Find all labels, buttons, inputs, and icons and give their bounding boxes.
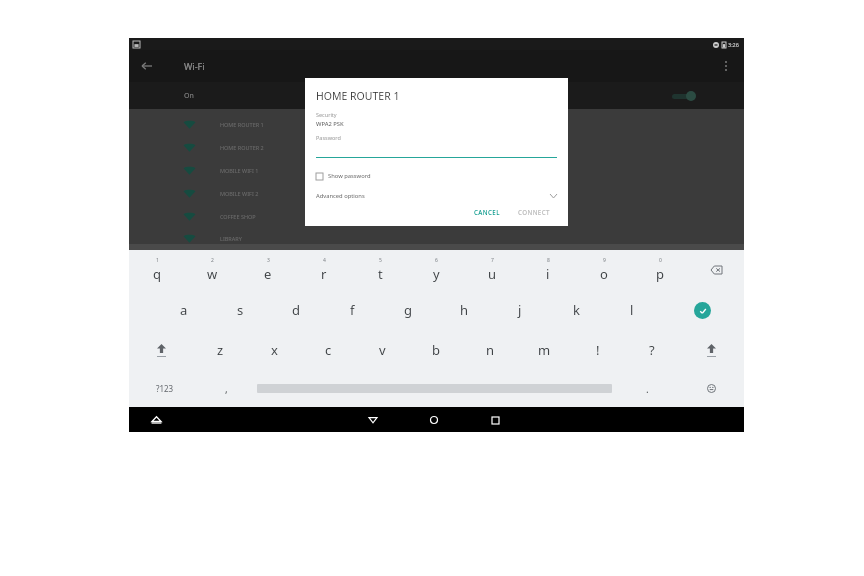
button[interactable]: LIBRARY bbox=[129, 228, 744, 249]
staticText: h bbox=[460, 301, 469, 319]
staticText: t bbox=[378, 265, 383, 283]
button[interactable]: v bbox=[355, 330, 409, 370]
button[interactable]: More options bbox=[716, 56, 736, 76]
button[interactable]: h bbox=[436, 290, 492, 330]
button[interactable]: m bbox=[517, 330, 571, 370]
staticText: k bbox=[573, 301, 580, 319]
staticText: Wi-Fi bbox=[184, 60, 205, 72]
button[interactable]: l bbox=[604, 290, 660, 330]
staticText: 2 bbox=[211, 257, 214, 264]
button[interactable]: z bbox=[193, 330, 247, 370]
staticText: y bbox=[433, 265, 440, 283]
button[interactable]: HOME ROUTER 1 bbox=[129, 113, 744, 136]
button[interactable]: 3 bbox=[240, 250, 296, 290]
staticText: MOBILE WIFI 1 bbox=[220, 167, 259, 174]
button[interactable]: ? bbox=[625, 330, 679, 370]
button[interactable]: x bbox=[247, 330, 301, 370]
button[interactable]: Space bbox=[251, 370, 617, 407]
staticText: w bbox=[207, 265, 218, 283]
staticText: n bbox=[486, 341, 495, 359]
staticText: 1 bbox=[156, 257, 159, 264]
button[interactable]: Recents bbox=[486, 411, 504, 429]
staticText: f bbox=[350, 301, 355, 319]
staticText: l bbox=[630, 301, 634, 319]
button[interactable]: . bbox=[617, 370, 678, 407]
button[interactable]: HOME ROUTER 2 bbox=[129, 136, 744, 159]
button[interactable]: j bbox=[492, 290, 548, 330]
button[interactable]: Wi-Fi toggle bbox=[670, 88, 696, 104]
button[interactable]: c bbox=[301, 330, 355, 370]
staticText: MOBILE WIFI 2 bbox=[220, 190, 259, 197]
staticText: ?123 bbox=[156, 383, 174, 394]
button[interactable]: 1 bbox=[129, 250, 184, 290]
staticText: ? bbox=[649, 341, 655, 359]
button[interactable]: 6 bbox=[408, 250, 464, 290]
staticText: d bbox=[292, 301, 300, 319]
staticText: 7 bbox=[491, 257, 494, 264]
staticText: 6 bbox=[435, 257, 438, 264]
button[interactable]: Shift bbox=[129, 330, 193, 370]
staticText: e bbox=[264, 265, 272, 283]
button[interactable]: Advanced options bbox=[316, 192, 557, 200]
staticText: s bbox=[237, 301, 244, 319]
staticText: , bbox=[225, 382, 228, 396]
button[interactable]: n bbox=[463, 330, 517, 370]
staticText: p bbox=[656, 265, 664, 283]
button[interactable]: f bbox=[324, 290, 380, 330]
button[interactable]: Show password bbox=[316, 172, 371, 180]
staticText: Advanced options bbox=[316, 192, 365, 200]
staticText: 3:26 bbox=[728, 41, 739, 48]
button[interactable]: CANCEL bbox=[467, 205, 507, 219]
staticText: q bbox=[153, 265, 161, 283]
button[interactable]: 5 bbox=[352, 250, 408, 290]
staticText: On bbox=[184, 91, 194, 101]
button[interactable]: 0 bbox=[632, 250, 688, 290]
staticText: WPA2 PSK bbox=[316, 120, 344, 128]
button[interactable]: Shift bbox=[679, 330, 744, 370]
button[interactable]: MOBILE WIFI 1 bbox=[129, 159, 744, 182]
button[interactable]: 2 bbox=[184, 250, 240, 290]
staticText: Password bbox=[316, 134, 341, 141]
button[interactable]: 9 bbox=[576, 250, 632, 290]
staticText: HOME ROUTER 1 bbox=[316, 89, 400, 103]
staticText: 3 bbox=[267, 257, 270, 264]
button[interactable]: d bbox=[268, 290, 324, 330]
button[interactable]: MOBILE WIFI 2 bbox=[129, 182, 744, 205]
staticText: HOME ROUTER 2 bbox=[220, 144, 264, 151]
button[interactable]: s bbox=[212, 290, 268, 330]
button[interactable]: k bbox=[548, 290, 604, 330]
button[interactable]: COFFEE SHOP bbox=[129, 205, 744, 228]
button[interactable]: ! bbox=[571, 330, 625, 370]
staticText: u bbox=[488, 265, 497, 283]
staticText: x bbox=[271, 341, 278, 359]
staticText: i bbox=[546, 265, 550, 283]
button[interactable]: Backspace bbox=[688, 250, 744, 290]
staticText: COFFEE SHOP bbox=[220, 213, 256, 220]
button[interactable]: Enter bbox=[660, 290, 744, 330]
button[interactable]: Back bbox=[137, 56, 157, 76]
button[interactable]: ?123 bbox=[129, 370, 201, 407]
button[interactable]: 8 bbox=[520, 250, 576, 290]
button[interactable]: a bbox=[156, 290, 212, 330]
staticText: Security bbox=[316, 111, 337, 118]
staticText: CONNECT bbox=[518, 208, 550, 216]
button[interactable]: CONNECT bbox=[511, 205, 557, 219]
staticText: 9 bbox=[603, 257, 606, 264]
button[interactable]: Back bbox=[364, 411, 382, 429]
staticText: v bbox=[379, 341, 386, 359]
staticText: j bbox=[518, 301, 522, 319]
button[interactable]: b bbox=[409, 330, 463, 370]
staticText: Show password bbox=[328, 172, 371, 180]
staticText: m bbox=[538, 341, 551, 359]
button[interactable]: 4 bbox=[296, 250, 352, 290]
staticText: . bbox=[646, 382, 649, 396]
staticText: z bbox=[217, 341, 224, 359]
button[interactable]: Home bbox=[425, 411, 443, 429]
staticText: 0 bbox=[659, 257, 662, 264]
button[interactable]: , bbox=[201, 370, 251, 407]
button[interactable]: g bbox=[380, 290, 436, 330]
staticText: 8 bbox=[547, 257, 550, 264]
button[interactable]: 7 bbox=[464, 250, 520, 290]
button[interactable]: Emoji bbox=[678, 370, 744, 407]
staticText: o bbox=[600, 265, 608, 283]
